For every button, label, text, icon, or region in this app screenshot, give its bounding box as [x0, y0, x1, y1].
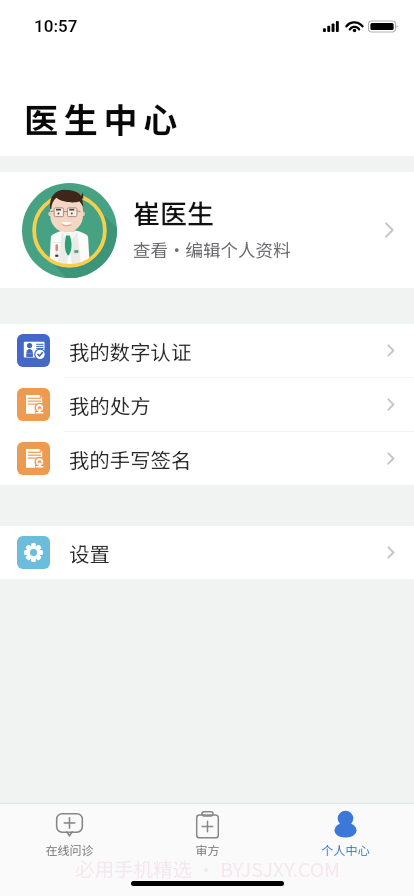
button[interactable]: 崔医生 [0, 172, 414, 288]
button[interactable]: 审方 [138, 804, 276, 858]
button[interactable]: 个人中心 [276, 804, 414, 858]
staticText: 审方 [195, 841, 220, 858]
staticText: 个人中心 [321, 841, 370, 858]
staticText: 我的手写签名 [69, 444, 386, 474]
staticText: 设置 [69, 538, 386, 568]
button[interactable]: 我的处方 [0, 378, 414, 431]
button[interactable]: 我的手写签名 [0, 432, 414, 485]
button[interactable]: 我的数字认证 [0, 324, 414, 377]
staticText: 10:57 [34, 16, 78, 36]
button[interactable]: 设置 [0, 526, 414, 579]
button[interactable]: 在线问诊 [0, 804, 138, 858]
staticText: 医生中心 [24, 94, 183, 143]
staticText: 在线问诊 [45, 841, 94, 858]
staticText: 必用手机精选 · BYJSJXY.COM [75, 854, 340, 882]
staticText: 我的数字认证 [69, 336, 386, 366]
staticText: 我的处方 [69, 390, 386, 420]
staticText: 查看·编辑个人资料 [133, 237, 291, 262]
staticText: 崔医生 [133, 193, 214, 232]
